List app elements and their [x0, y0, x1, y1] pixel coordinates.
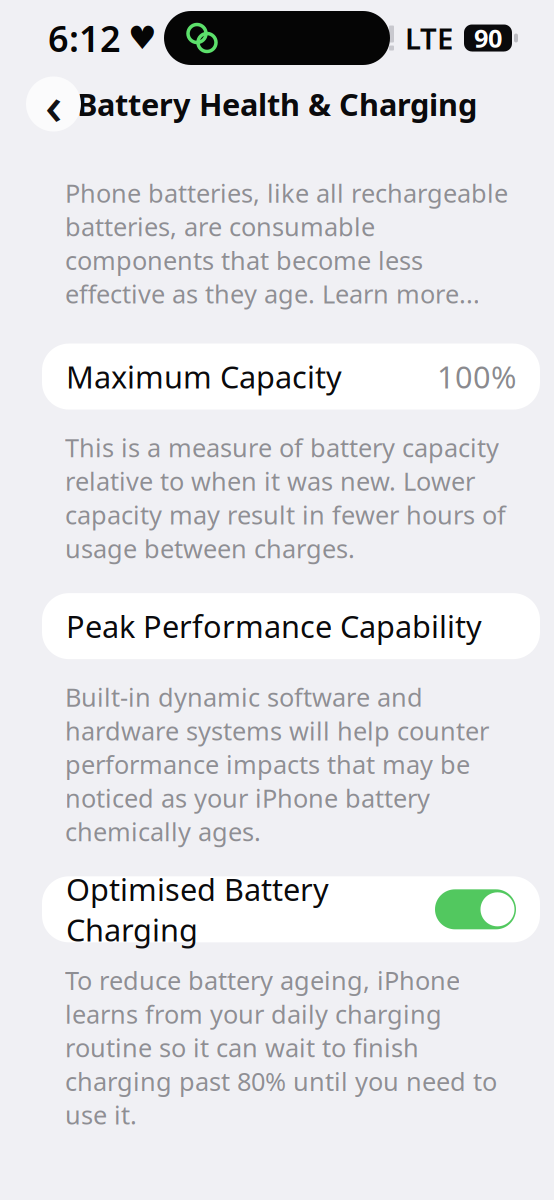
- staticText: Battery Health & Charging: [77, 84, 477, 124]
- staticText: 6:12: [48, 14, 121, 62]
- staticText: Peak Performance Capability: [66, 606, 482, 646]
- staticText: This is a measure of battery capacity re…: [65, 431, 506, 565]
- staticText: Phone batteries, like all rechargeable b…: [65, 176, 508, 311]
- staticText: To reduce battery ageing, iPhone learns …: [65, 963, 497, 1131]
- staticText: ♥: [128, 20, 157, 56]
- staticText: 90: [474, 21, 502, 55]
- button[interactable]: Optimised Battery Charging: [42, 876, 540, 942]
- button[interactable]: Maximum Capacity: [42, 344, 540, 410]
- staticText: LTE: [405, 18, 453, 57]
- button[interactable]: Peak Performance Capability: [42, 593, 540, 659]
- button[interactable]: Back: [26, 76, 81, 131]
- staticText: ‹: [45, 69, 62, 139]
- staticText: Built-in dynamic software and hardware s…: [65, 680, 489, 848]
- staticText: Optimised Battery Charging: [66, 869, 329, 950]
- staticText: Maximum Capacity: [66, 356, 342, 397]
- staticText: 100%: [437, 356, 516, 397]
